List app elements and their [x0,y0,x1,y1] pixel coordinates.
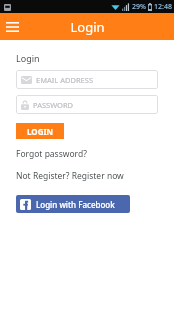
staticText: 29% [132,2,146,12]
staticText: Login [16,52,40,64]
button[interactable]: Forgot password? [16,148,87,160]
button[interactable]: Open navigation menu [0,15,24,39]
button[interactable]: Login with Facebook [16,195,130,213]
button[interactable]: LOGIN [16,123,64,139]
staticText: Login with Facebook [36,199,115,210]
button[interactable]: Not Register? Register now [16,170,124,182]
staticText: Forgot password? [16,148,87,160]
button[interactable]: EMAIL ADDRESS [16,70,158,89]
staticText: LOGIN [27,126,54,137]
staticText: Login [70,18,105,36]
staticText: 12:48 [154,2,172,12]
button[interactable]: PASSWORD [16,95,158,114]
staticText: EMAIL ADDRESS [36,75,93,85]
staticText: Not Register? Register now [16,170,124,182]
staticText: PASSWORD [33,100,74,110]
